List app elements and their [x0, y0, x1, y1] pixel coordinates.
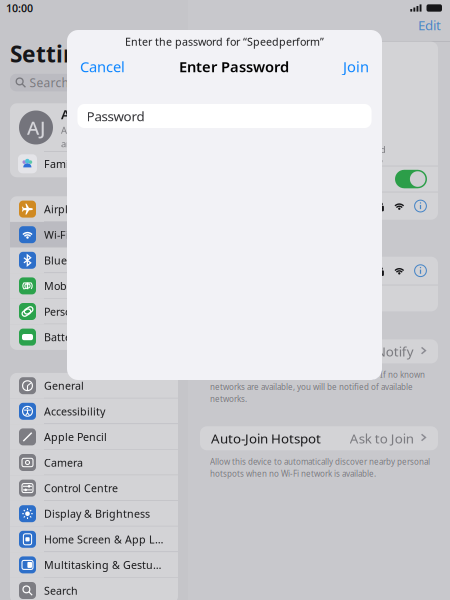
button[interactable]: Battery	[10, 324, 178, 350]
button[interactable]: Wi-Fi	[10, 222, 178, 247]
staticText: General	[44, 379, 84, 393]
staticText: Control Centre	[44, 481, 118, 495]
button[interactable]: General	[10, 373, 178, 398]
button[interactable]: Other…	[200, 285, 438, 311]
staticText: networks.	[210, 394, 247, 404]
button[interactable]: Auto-Join Hotspot	[200, 426, 438, 450]
staticText: Apple Pencil	[44, 430, 107, 444]
button[interactable]: Airplane Mode	[10, 196, 178, 222]
button[interactable]: Apple Pencil	[10, 424, 178, 450]
button[interactable]: Control Centre	[10, 475, 178, 501]
staticText: Bluetooth	[44, 253, 94, 267]
staticText: AJ	[27, 115, 45, 140]
staticText: Accessibility	[44, 404, 105, 418]
staticText: Personal Hotspot	[44, 304, 130, 319]
staticText: Ask to Join	[350, 429, 414, 447]
staticText: Cancel	[80, 57, 125, 76]
staticText: Family	[44, 157, 77, 171]
staticText: Auto-Join Hotspot	[211, 429, 321, 447]
button[interactable]: Camera	[10, 450, 178, 475]
button[interactable]: Home Screen & App Library	[10, 526, 178, 552]
staticText: Enter Password	[179, 57, 289, 76]
button[interactable]: Bluetooth	[10, 247, 178, 273]
staticText: Allow this device to automatically disco…	[210, 456, 430, 467]
button[interactable]: Ask to Join Networks	[200, 339, 438, 363]
staticText: Join	[343, 57, 369, 76]
staticText: Home Screen & App Library	[44, 532, 164, 546]
staticText: Settings	[10, 39, 103, 69]
staticText: Camera	[44, 455, 83, 470]
staticText: Connect to Wi-Fi networks, and	[252, 143, 386, 156]
button[interactable]: HomeNet 5G	[200, 257, 438, 285]
button[interactable]: Personal Hotspot	[10, 299, 178, 324]
button[interactable]: Multitasking & Gestures	[10, 552, 178, 578]
staticText: Display & Brightness	[44, 507, 150, 521]
staticText: networks are available, you will be noti…	[210, 381, 413, 392]
button[interactable]: Accessibility	[10, 398, 178, 424]
staticText: hotspots when no Wi-Fi network is availa…	[210, 468, 376, 479]
staticText: Search	[44, 583, 78, 598]
button[interactable]: Join	[337, 52, 375, 81]
staticText: Password	[86, 107, 144, 125]
button[interactable]: Wi-Fi	[200, 166, 438, 192]
staticText: and more	[61, 137, 104, 150]
button[interactable]: Search	[10, 578, 178, 600]
staticText: Search	[29, 75, 68, 90]
staticText: Multitasking & Gestures	[44, 558, 164, 572]
staticText: Enter the password for “Speedperform”	[125, 34, 324, 49]
staticText: Notify	[376, 342, 414, 360]
button[interactable]: Edit	[409, 12, 450, 38]
staticText: Alex Johnson	[61, 105, 146, 123]
staticText: Edit	[418, 16, 441, 34]
staticText: Airplane Mode	[44, 202, 119, 216]
staticText: Known networks will be joined automatica…	[210, 369, 425, 380]
button[interactable]: Cancel	[74, 52, 131, 81]
staticText: Mobile Data	[44, 279, 106, 293]
staticText: see available networks nearby	[255, 156, 383, 168]
staticText: Battery	[44, 330, 80, 344]
staticText: Apple Account, iCloud,	[61, 124, 159, 136]
staticText: Wi-Fi	[297, 111, 341, 136]
button[interactable]: Speedperform	[200, 192, 438, 220]
button[interactable]: Mobile Data	[10, 273, 178, 299]
staticText: Wi-Fi	[44, 228, 69, 242]
button[interactable]: Display & Brightness	[10, 501, 178, 526]
button[interactable]: AJ	[10, 103, 178, 177]
staticText: 10:00	[6, 1, 33, 15]
